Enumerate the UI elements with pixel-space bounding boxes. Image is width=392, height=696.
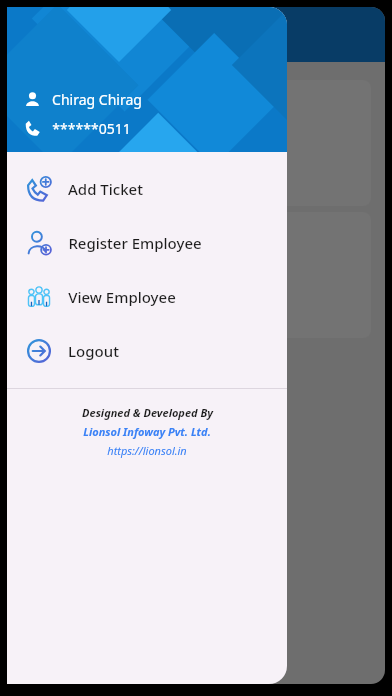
button[interactable]: View Employee [7,270,287,324]
staticText: Register Employee [68,233,202,253]
staticText: Designed & Developed By [82,405,213,420]
other: User [24,91,41,108]
other: Register Employee [26,230,52,256]
staticText: ******0511 [52,119,131,138]
button[interactable]: Register Employee [7,216,287,270]
staticText: Add Ticket [68,179,143,199]
staticText: View Employee [68,287,176,307]
button[interactable]: AMC [21,212,371,338]
staticText: Logout [68,341,119,361]
staticText: Chirag Chirag [52,90,142,109]
other: Add Ticket [26,176,52,202]
other: View Employee [26,284,52,310]
other: Logout [26,338,52,364]
button[interactable]: Logout [7,324,287,378]
other: Phone [24,120,41,137]
staticText: https://lionsol.in [107,443,187,458]
staticText: Lionsol Infoway Pvt. Ltd. [83,424,211,439]
button[interactable]: Services [21,80,371,206]
button[interactable]: Add Ticket [7,162,287,216]
